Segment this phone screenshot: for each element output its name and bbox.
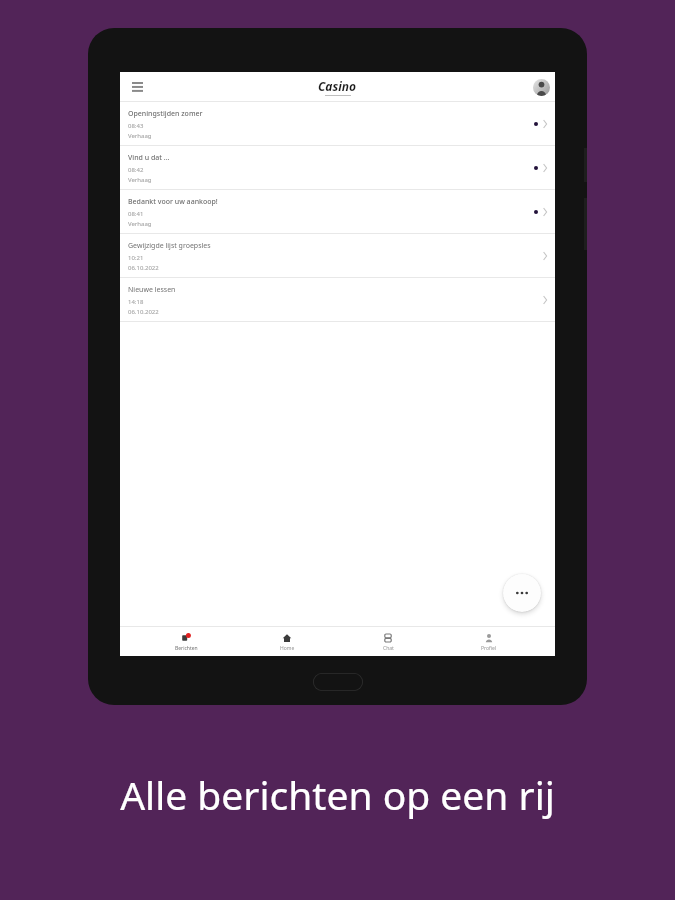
button[interactable]: Menu (126, 76, 148, 98)
staticText: 06.10.2022 (128, 264, 159, 272)
staticText: Home (280, 645, 295, 652)
staticText: Chat (383, 645, 394, 652)
staticText: Verhaag (128, 176, 152, 184)
button[interactable]: More options (503, 574, 541, 612)
button[interactable]: Chat (353, 628, 423, 656)
button[interactable]: Nieuwe lessen (120, 278, 555, 322)
staticText: Berichten (175, 645, 198, 652)
staticText: Bedankt voor uw aankoop! (128, 197, 218, 207)
staticText: Alle berichten op een rij (0, 768, 675, 821)
staticText: 08:42 (128, 166, 144, 174)
staticText: Nieuwe lessen (128, 285, 176, 295)
staticText: Verhaag (128, 132, 152, 140)
staticText: Vind u dat ... (128, 153, 170, 163)
staticText: Openingstijden zomer (128, 109, 203, 119)
staticText: Verhaag (128, 220, 152, 228)
button[interactable]: Profiel (454, 628, 524, 656)
button[interactable]: Vind u dat ... (120, 146, 555, 190)
staticText: 06.10.2022 (128, 308, 159, 316)
staticText: 10:21 (128, 254, 144, 262)
button[interactable]: Openingstijden zomer (120, 102, 555, 146)
staticText: Casino (318, 78, 357, 94)
staticText: Gewijzigde lijst groepsles (128, 241, 211, 251)
staticText: 14:18 (128, 298, 144, 306)
button[interactable]: Profile (533, 79, 550, 96)
button[interactable]: Gewijzigde lijst groepsles (120, 234, 555, 278)
button[interactable]: Bedankt voor uw aankoop! (120, 190, 555, 234)
staticText: 08:43 (128, 122, 144, 130)
staticText: Profiel (481, 645, 497, 652)
button[interactable]: Berichten (151, 628, 221, 656)
staticText: 08:41 (128, 210, 144, 218)
button[interactable]: Home (252, 628, 322, 656)
